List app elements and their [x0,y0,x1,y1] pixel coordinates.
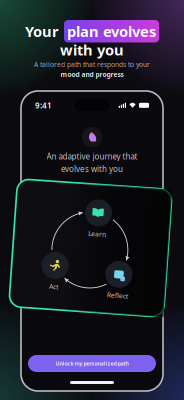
staticText: Your [25,21,59,41]
staticText: evolves with you [61,164,123,174]
staticText: Act [52,284,61,293]
staticText: Reflect [110,289,131,298]
staticText: An adaptive journey that [46,151,137,162]
staticText: Unlock my personalized path [55,360,128,367]
staticText: with you [60,40,124,59]
staticText: Learn [87,229,105,238]
staticText: mood and progress [60,70,123,79]
button[interactable]: Unlock my personalized path [28,355,156,372]
staticText: A tailored path that responds to your [34,60,150,69]
staticText: 9:41 [35,100,52,111]
staticText: plan evolves [67,21,156,41]
